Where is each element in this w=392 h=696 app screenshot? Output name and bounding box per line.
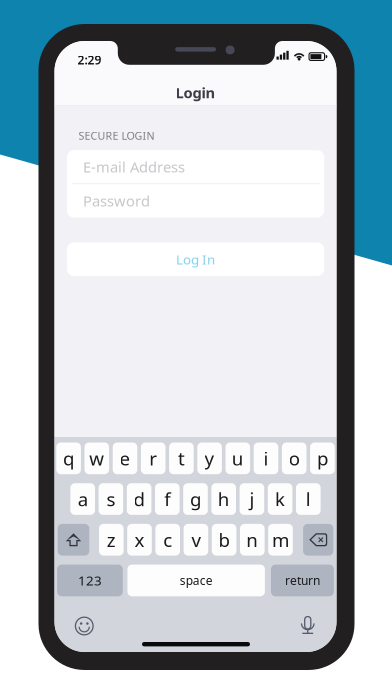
- button[interactable]: Log In: [67, 242, 324, 276]
- button[interactable]: space: [127, 565, 265, 596]
- staticText: Password: [83, 191, 150, 211]
- button[interactable]: u: [225, 442, 250, 474]
- staticText: n: [246, 527, 258, 552]
- staticText: SECURE LOGIN: [78, 128, 154, 143]
- button[interactable]: y: [197, 442, 222, 474]
- staticText: a: [78, 487, 88, 511]
- button[interactable]: Emoji keyboard: [75, 616, 94, 635]
- staticText: i: [263, 446, 268, 471]
- button[interactable]: Delete: [303, 524, 333, 556]
- button[interactable]: k: [268, 483, 292, 515]
- button[interactable]: p: [310, 442, 335, 474]
- staticText: c: [163, 527, 172, 552]
- staticText: z: [107, 527, 116, 552]
- staticText: j: [249, 487, 254, 511]
- staticText: 2:29: [77, 52, 101, 68]
- button[interactable]: Password: [67, 184, 324, 217]
- staticText: space: [180, 572, 213, 588]
- button[interactable]: b: [212, 524, 236, 556]
- staticText: t: [178, 446, 185, 471]
- button[interactable]: Shift: [58, 524, 89, 556]
- staticText: p: [317, 446, 328, 471]
- staticText: d: [134, 487, 145, 511]
- staticText: u: [232, 446, 244, 471]
- button[interactable]: s: [99, 483, 123, 515]
- staticText: q: [63, 446, 74, 471]
- button[interactable]: i: [254, 442, 278, 474]
- staticText: l: [306, 487, 311, 511]
- button[interactable]: j: [240, 483, 264, 515]
- button[interactable]: n: [240, 524, 265, 556]
- staticText: e: [119, 446, 130, 471]
- staticText: E-mail Address: [83, 157, 185, 177]
- button[interactable]: x: [127, 524, 152, 556]
- button[interactable]: 123: [57, 565, 123, 596]
- button[interactable]: d: [127, 483, 151, 515]
- button[interactable]: o: [282, 442, 306, 474]
- button[interactable]: m: [268, 524, 293, 556]
- button[interactable]: q: [56, 442, 81, 474]
- staticText: 123: [78, 572, 102, 589]
- button[interactable]: t: [169, 442, 194, 474]
- button[interactable]: a: [70, 483, 95, 515]
- button[interactable]: r: [141, 442, 165, 474]
- staticText: r: [149, 446, 157, 471]
- staticText: o: [289, 446, 300, 471]
- button[interactable]: e: [113, 442, 137, 474]
- staticText: y: [205, 446, 215, 471]
- button[interactable]: v: [184, 524, 208, 556]
- staticText: w: [89, 446, 104, 471]
- staticText: v: [191, 527, 200, 552]
- staticText: k: [275, 487, 285, 511]
- staticText: Log In: [176, 250, 215, 268]
- button[interactable]: Dictation: [299, 615, 316, 636]
- staticText: f: [164, 487, 170, 511]
- staticText: x: [134, 527, 144, 552]
- staticText: s: [106, 487, 115, 511]
- button[interactable]: return: [271, 565, 334, 596]
- staticText: m: [272, 527, 289, 552]
- staticText: return: [285, 572, 320, 588]
- button[interactable]: l: [296, 483, 321, 515]
- staticText: g: [190, 487, 201, 511]
- button[interactable]: E-mail Address: [67, 150, 324, 183]
- button[interactable]: f: [155, 483, 180, 515]
- staticText: h: [218, 487, 230, 511]
- button[interactable]: h: [211, 483, 236, 515]
- button[interactable]: w: [84, 442, 109, 474]
- button[interactable]: z: [99, 524, 124, 556]
- button[interactable]: g: [183, 483, 208, 515]
- staticText: Login: [175, 83, 215, 102]
- staticText: b: [219, 527, 230, 552]
- button[interactable]: c: [155, 524, 180, 556]
